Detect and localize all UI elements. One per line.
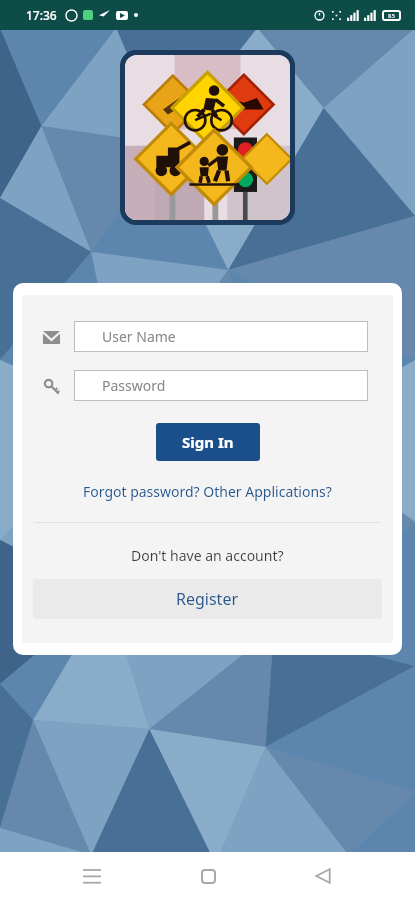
button[interactable]: Sign In [156, 423, 260, 461]
staticText: Don't have an account? [131, 546, 284, 565]
button[interactable]: Password [74, 370, 368, 401]
button[interactable]: Home [184, 852, 232, 900]
staticText: Password [102, 376, 166, 395]
other: App logo traffic signs [125, 55, 290, 220]
staticText: Register [176, 588, 239, 610]
button[interactable]: User Name [74, 321, 368, 352]
button[interactable]: Back [299, 852, 347, 900]
staticText: User Name [102, 327, 176, 346]
staticText: Forgot password? Other Applications? [83, 482, 332, 501]
staticText: 85 [388, 12, 395, 20]
button[interactable]: Register [33, 579, 382, 619]
button[interactable]: Forgot password? Other Applications? [22, 482, 393, 501]
staticText: 17:36 [26, 7, 57, 23]
button[interactable]: Recent apps [68, 852, 116, 900]
staticText: Sign In [182, 432, 234, 452]
